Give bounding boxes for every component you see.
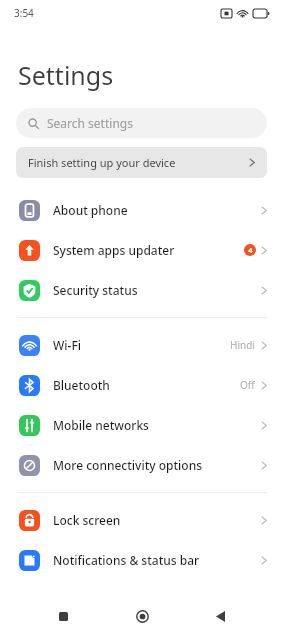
button[interactable]: Mobile networks — [0, 405, 283, 445]
button[interactable]: Recent apps — [48, 602, 78, 630]
staticText: Lock screen — [53, 512, 121, 528]
staticText: Search settings — [47, 115, 133, 131]
staticText: Security status — [53, 282, 138, 298]
staticText: Wi-Fi — [53, 337, 81, 353]
button[interactable]: Lock screen — [0, 500, 283, 540]
button[interactable]: More connectivity options — [0, 445, 283, 485]
staticText: 4 — [248, 245, 253, 255]
staticText: 3:54 — [14, 6, 34, 20]
button[interactable]: Back — [205, 602, 235, 630]
staticText: Notifications & status bar — [53, 552, 200, 568]
staticText: Hindi — [230, 338, 255, 352]
staticText: System apps updater — [53, 242, 175, 258]
staticText: Bluetooth — [53, 377, 110, 393]
staticText: About phone — [53, 202, 128, 218]
button[interactable]: Search settings — [16, 108, 267, 138]
button[interactable]: Bluetooth — [0, 365, 283, 405]
button[interactable]: Home — [127, 602, 157, 630]
staticText: More connectivity options — [53, 457, 202, 473]
staticText: Off — [240, 378, 255, 392]
button[interactable]: Wi-Fi — [0, 325, 283, 365]
button[interactable]: Finish setting up your device — [16, 147, 267, 178]
staticText: Settings — [18, 58, 114, 92]
button[interactable]: About phone — [0, 190, 283, 230]
staticText: Mobile networks — [53, 417, 149, 433]
button[interactable]: Security status — [0, 270, 283, 310]
staticText: Finish setting up your device — [28, 155, 176, 170]
button[interactable]: Notifications & status bar — [0, 540, 283, 580]
button[interactable]: System apps updater — [0, 230, 283, 270]
